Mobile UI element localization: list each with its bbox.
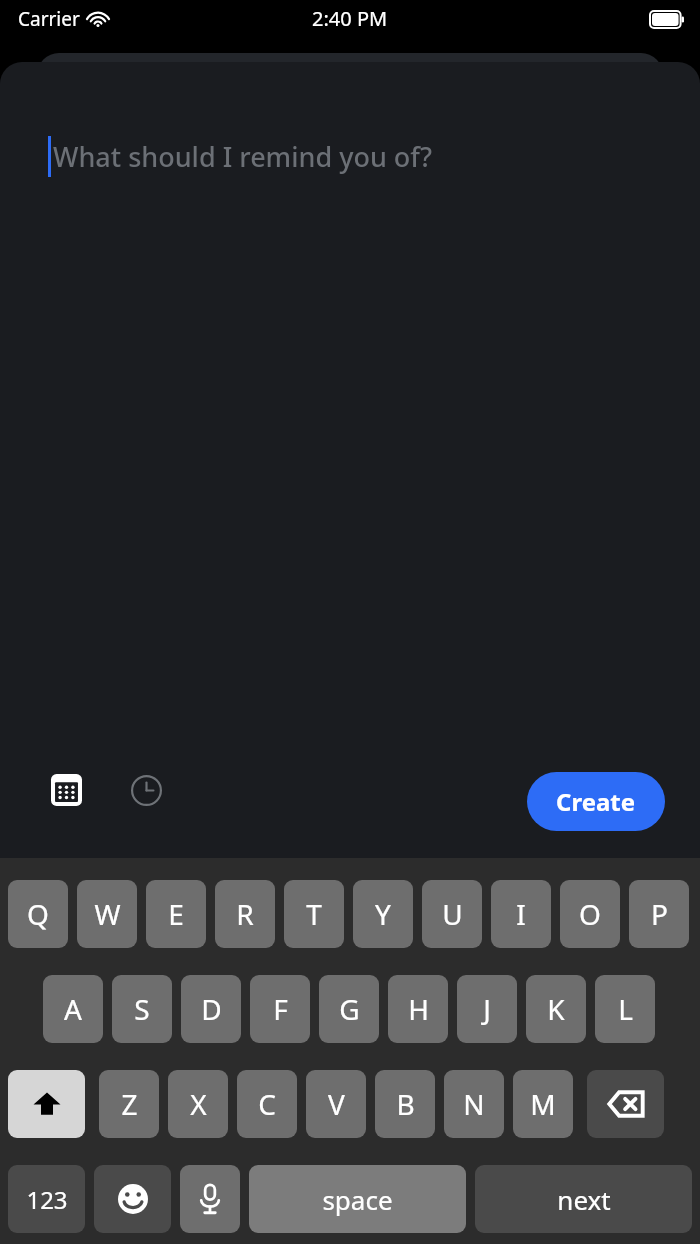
button[interactable]: D — [181, 975, 241, 1043]
button[interactable]: next — [475, 1165, 692, 1233]
button[interactable]: 123 — [8, 1165, 85, 1233]
staticText: F — [273, 990, 288, 1028]
staticText: space — [322, 1182, 393, 1217]
staticText: N — [463, 1085, 485, 1123]
staticText: What should I remind you of? — [53, 138, 433, 175]
staticText: K — [547, 990, 565, 1028]
staticText: Create — [556, 785, 636, 818]
button[interactable]: Pick time — [128, 772, 164, 808]
button[interactable]: emoji — [94, 1165, 171, 1233]
staticText: B — [396, 1085, 415, 1123]
button[interactable]: J — [457, 975, 517, 1043]
button[interactable]: O — [560, 880, 620, 948]
button[interactable]: Y — [353, 880, 413, 948]
staticText: J — [483, 990, 491, 1028]
button[interactable]: R — [215, 880, 275, 948]
button[interactable]: Create — [527, 772, 665, 831]
staticText: E — [168, 895, 184, 933]
button[interactable]: C — [237, 1070, 297, 1138]
staticText: R — [236, 895, 254, 933]
staticText: Carrier — [18, 6, 80, 32]
button[interactable]: N — [444, 1070, 504, 1138]
button[interactable]: G — [319, 975, 379, 1043]
staticText: H — [408, 990, 429, 1028]
button[interactable]: Q — [8, 880, 68, 948]
staticText: S — [134, 990, 150, 1028]
staticText: U — [442, 895, 463, 933]
staticText: P — [651, 895, 668, 933]
button[interactable]: S — [112, 975, 172, 1043]
button[interactable]: V — [306, 1070, 366, 1138]
staticText: C — [258, 1085, 276, 1123]
button[interactable]: T — [284, 880, 344, 948]
button[interactable]: B — [375, 1070, 435, 1138]
staticText: Y — [375, 895, 391, 933]
button[interactable]: M — [513, 1070, 573, 1138]
staticText: A — [64, 990, 82, 1028]
staticText: X — [190, 1085, 207, 1123]
staticText: D — [201, 990, 222, 1028]
button[interactable]: Z — [99, 1070, 159, 1138]
staticText: T — [306, 895, 322, 933]
staticText: G — [339, 990, 360, 1028]
staticText: Z — [121, 1085, 138, 1123]
staticText: next — [557, 1182, 611, 1217]
button[interactable]: K — [526, 975, 586, 1043]
button[interactable]: Pick date — [48, 772, 84, 808]
button[interactable]: mic — [180, 1165, 240, 1233]
staticText: V — [328, 1085, 345, 1123]
button[interactable]: back — [587, 1070, 664, 1138]
button[interactable]: L — [595, 975, 655, 1043]
staticText: L — [618, 990, 633, 1028]
button[interactable]: E — [146, 880, 206, 948]
staticText: O — [579, 895, 601, 933]
button[interactable]: A — [43, 975, 103, 1043]
button[interactable]: U — [422, 880, 482, 948]
button[interactable]: H — [388, 975, 448, 1043]
staticText: I — [516, 895, 526, 933]
button[interactable]: P — [629, 880, 689, 948]
staticText: 2:40 PM — [312, 5, 388, 32]
button[interactable]: space — [249, 1165, 466, 1233]
staticText: 123 — [26, 1183, 68, 1216]
button[interactable]: F — [250, 975, 310, 1043]
button[interactable]: X — [168, 1070, 228, 1138]
button[interactable]: W — [77, 880, 137, 948]
staticText: M — [530, 1085, 556, 1123]
button[interactable]: shift — [8, 1070, 85, 1138]
staticText: Q — [27, 895, 49, 933]
button[interactable]: I — [491, 880, 551, 948]
staticText: W — [94, 895, 121, 933]
